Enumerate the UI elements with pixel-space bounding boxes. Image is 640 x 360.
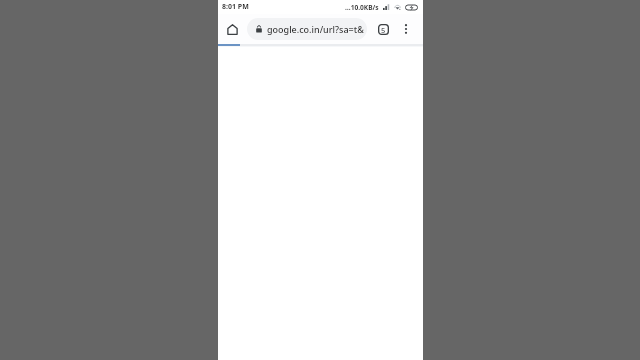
button[interactable]: More options: [397, 14, 414, 44]
button[interactable]: Address bar: [247, 18, 367, 40]
button[interactable]: Tabs: [373, 14, 393, 44]
staticText: 8:01 PM: [222, 2, 249, 12]
button[interactable]: Home: [222, 14, 243, 44]
staticText: 5: [381, 25, 386, 35]
staticText: …10.0KB/s: [345, 3, 379, 12]
staticText: google.co.in/url?sa=t&s: [267, 23, 364, 35]
